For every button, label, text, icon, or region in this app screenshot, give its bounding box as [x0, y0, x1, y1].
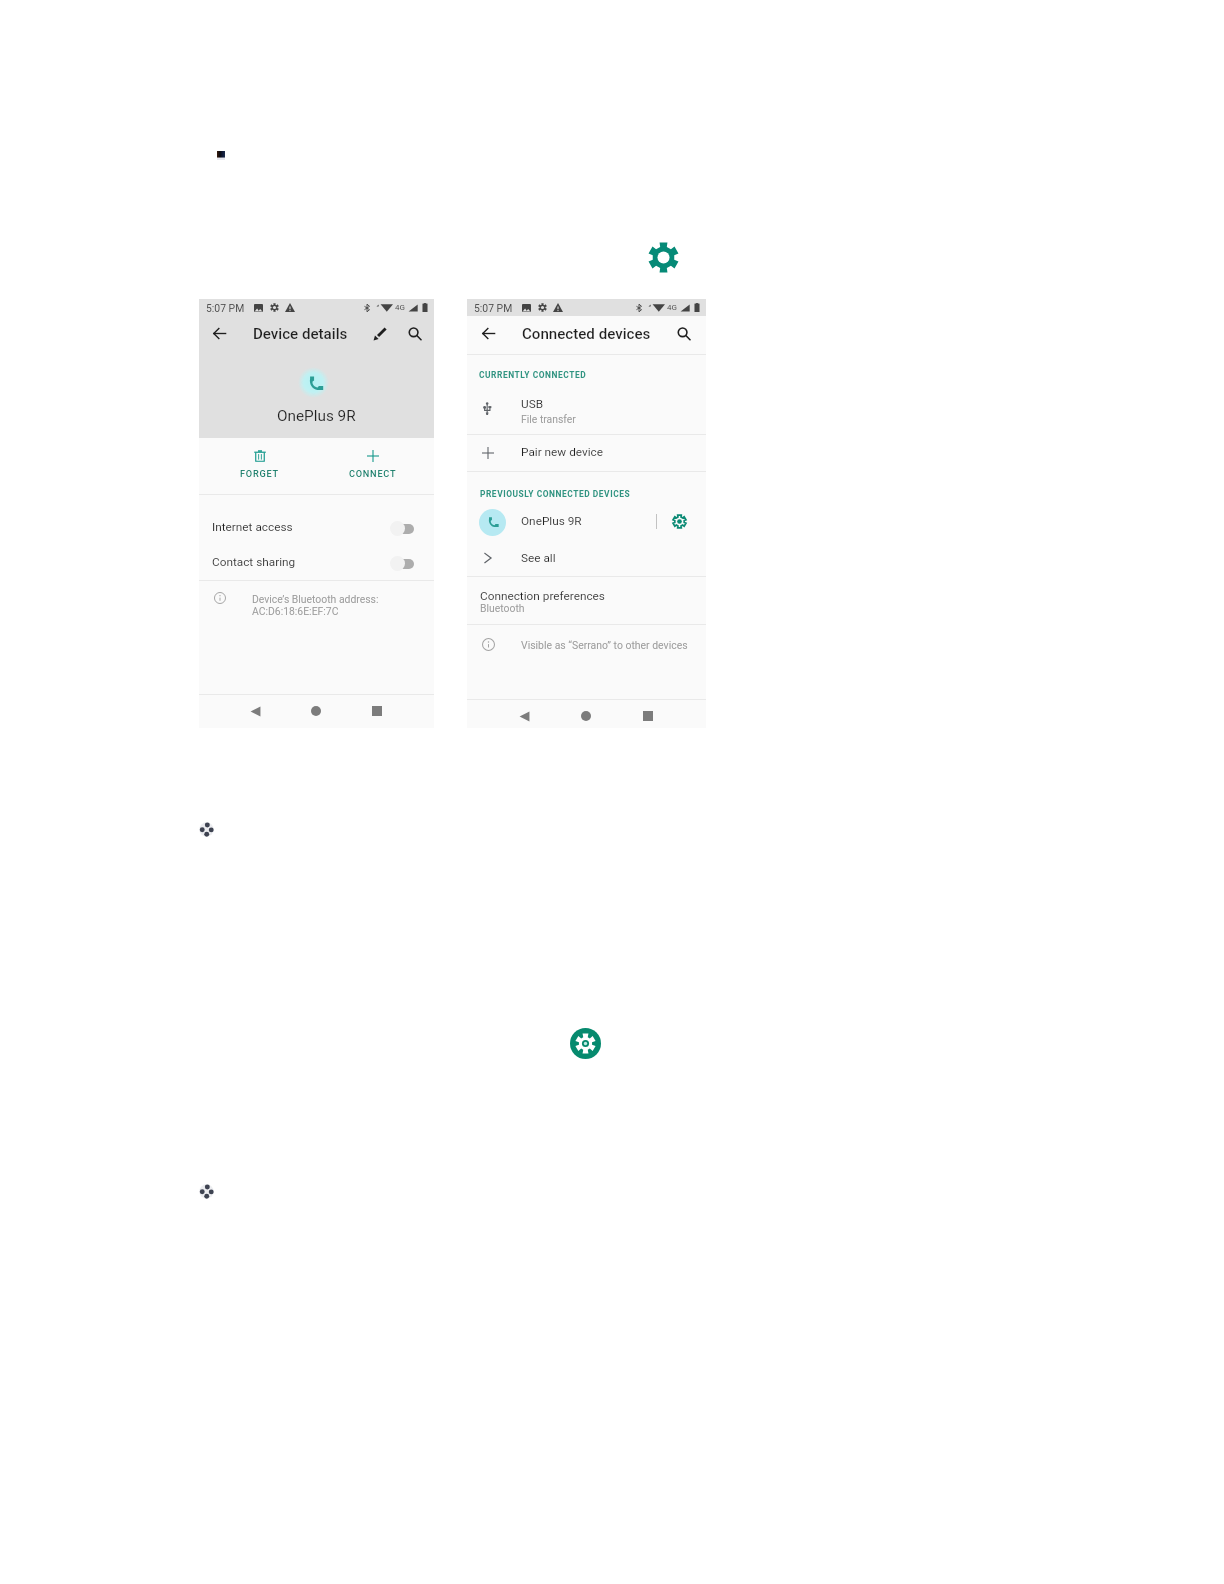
button[interactable]: Recents — [638, 706, 658, 726]
button[interactable]: FORGET — [213, 437, 305, 493]
button[interactable]: Rename — [373, 327, 387, 341]
staticText: Pair new device — [521, 445, 603, 459]
staticText: Internet access — [212, 520, 293, 534]
button[interactable]: USB — [467, 377, 706, 433]
staticText: CONNECT — [349, 468, 397, 479]
staticText: Device details — [253, 325, 348, 343]
button[interactable]: Back — [514, 706, 534, 726]
button[interactable]: Back — [213, 327, 226, 340]
button[interactable]: Device settings — [660, 505, 698, 537]
button[interactable]: Recents — [367, 701, 387, 721]
button[interactable]: Contact sharing — [199, 546, 434, 578]
button[interactable]: Home — [306, 701, 326, 721]
button[interactable]: CONNECT — [327, 437, 419, 493]
staticText: AC:D6:18:6E:EF:7C — [252, 605, 339, 617]
staticText: 5:07 PM — [206, 302, 245, 314]
staticText: USB — [521, 397, 544, 411]
staticText: Bluetooth — [480, 602, 525, 614]
button[interactable]: OnePlus 9R — [467, 498, 653, 538]
staticText: Contact sharing — [212, 555, 296, 569]
staticText: 4G — [667, 303, 677, 312]
staticText: 4G — [395, 303, 405, 312]
staticText: File transfer — [521, 413, 576, 425]
button[interactable]: Internet access — [199, 511, 434, 543]
button[interactable]: Search — [408, 327, 422, 341]
button[interactable]: Back — [245, 701, 265, 721]
button[interactable]: Pair new device — [467, 436, 706, 472]
staticText: Device’s Bluetooth address: — [252, 593, 379, 605]
button[interactable]: Search — [677, 327, 691, 341]
button[interactable]: Home — [576, 706, 596, 726]
staticText: See all — [521, 551, 556, 565]
button[interactable]: See all — [467, 539, 706, 573]
staticText: Connected devices — [522, 325, 651, 343]
staticText: Visible as “Serrano” to other devices — [521, 639, 688, 651]
button[interactable]: Back — [482, 327, 495, 340]
staticText: Connection preferences — [480, 589, 605, 603]
staticText: FORGET — [240, 468, 279, 479]
staticText: 5:07 PM — [474, 302, 513, 314]
staticText: OnePlus 9R — [277, 407, 356, 425]
staticText: PREVIOUSLY CONNECTED DEVICES — [480, 489, 631, 499]
staticText: OnePlus 9R — [521, 514, 582, 528]
staticText: CURRENTLY CONNECTED — [479, 370, 587, 380]
button[interactable]: Connection preferences — [467, 577, 706, 624]
